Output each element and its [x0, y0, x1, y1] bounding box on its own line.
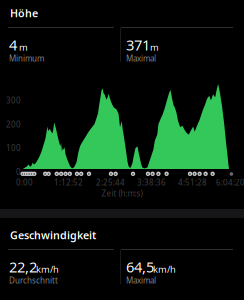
button[interactable]: Höhe	[0, 6, 244, 20]
staticText: 64,5	[126, 257, 154, 276]
staticText: Minimum	[9, 53, 44, 64]
staticText: Maximal	[126, 53, 156, 64]
staticText: km/h	[153, 263, 176, 275]
staticText: 3:38:36	[137, 177, 166, 188]
staticText: 4	[9, 35, 17, 54]
staticText: 0:00	[16, 177, 33, 188]
staticText: 22,2	[9, 257, 37, 276]
staticText: 200	[6, 119, 21, 130]
staticText: 4:51:28	[178, 177, 207, 188]
staticText: 2:25:44	[96, 177, 125, 188]
staticText: Maximal	[126, 275, 156, 286]
staticText: Zeit (h:m:s)	[101, 188, 142, 199]
staticText: km/h	[36, 263, 59, 275]
staticText: m	[150, 41, 159, 53]
staticText: Geschwindigkeit	[10, 228, 96, 242]
staticText: 100	[6, 142, 21, 153]
staticText: 1:12:52	[54, 177, 83, 188]
staticText: 371	[126, 35, 150, 54]
staticText: 0	[16, 166, 21, 177]
staticText: Durchschnitt	[9, 275, 58, 286]
staticText: 6:04:20	[216, 177, 244, 188]
staticText: Höhe	[10, 6, 38, 20]
staticText: m	[19, 41, 28, 53]
staticText: 300	[6, 95, 21, 106]
button[interactable]: Geschwindigkeit	[0, 228, 244, 242]
